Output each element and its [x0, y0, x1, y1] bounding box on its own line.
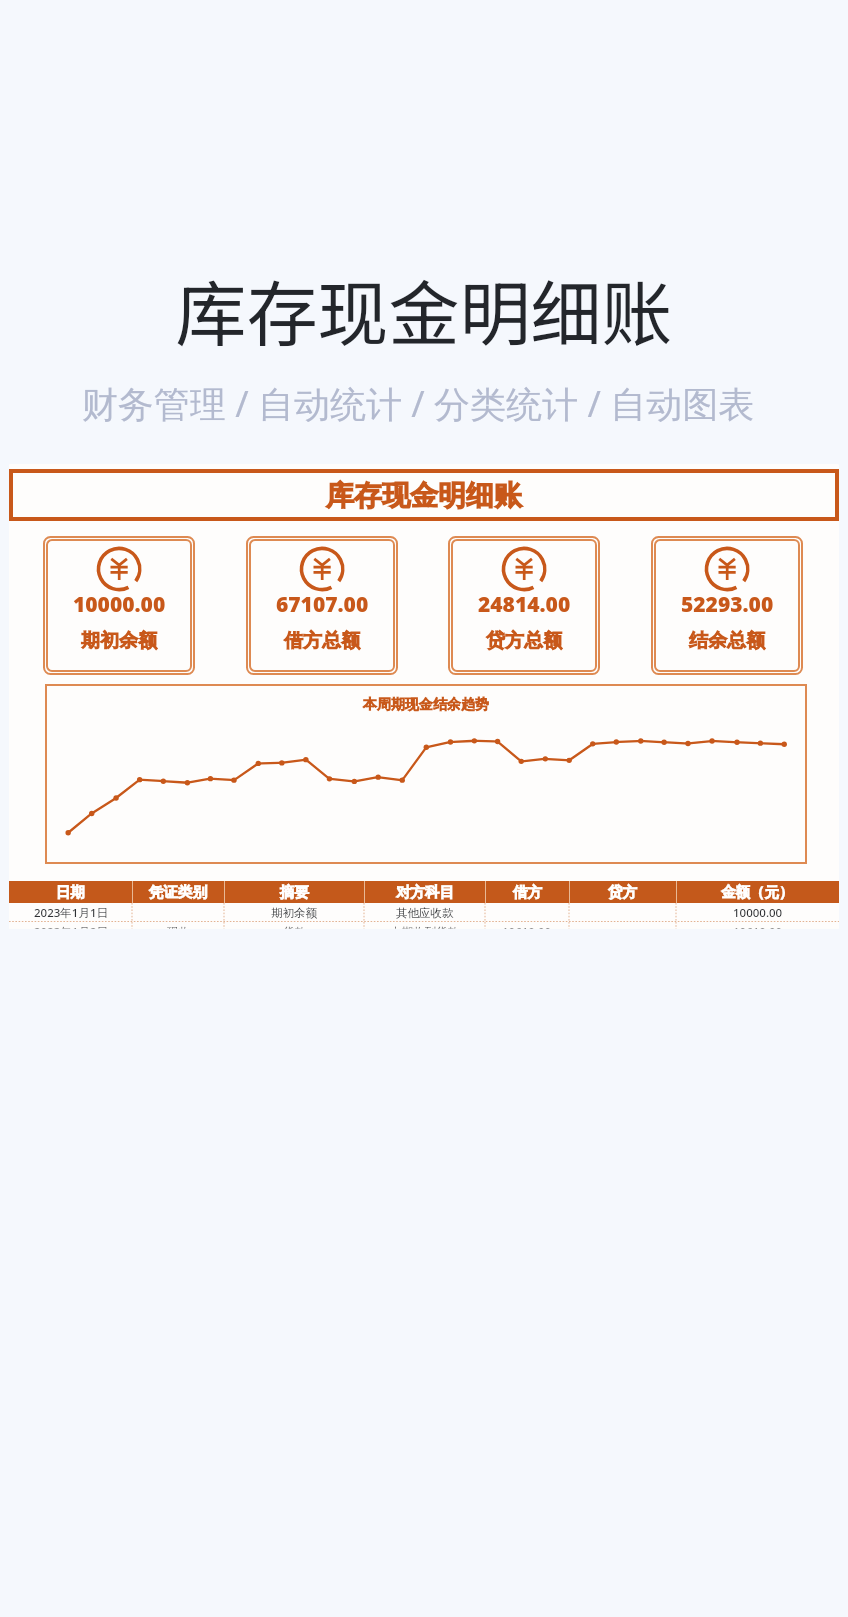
other: 金额	[300, 547, 344, 591]
staticText: 贷方	[608, 883, 637, 901]
button[interactable]: 金额	[651, 536, 803, 675]
button[interactable]: 金额	[43, 536, 195, 675]
staticText: 期初余额	[81, 629, 157, 653]
staticText: 52293.00	[681, 590, 774, 619]
staticText: 期初余额	[271, 906, 317, 920]
staticText: 借方	[513, 883, 542, 901]
staticText: 财务管理 / 自动统计 / 分类统计 / 自动图表	[0, 379, 842, 428]
other: 金额	[502, 547, 546, 591]
staticText: 金额（元）	[721, 883, 794, 901]
staticText: 67107.00	[276, 590, 369, 619]
staticText: 货款	[283, 925, 306, 929]
other: 金额	[97, 547, 141, 591]
button[interactable]: 库存现金明细账	[9, 469, 839, 521]
staticText: 10610.00	[502, 924, 552, 929]
staticText: 借方总额	[284, 629, 360, 653]
staticText: 2023年1月1日	[34, 905, 108, 921]
staticText: 本期收到货款	[390, 925, 459, 929]
button[interactable]: 2023年1月2日	[9, 922, 839, 929]
staticText: 日期	[56, 883, 85, 901]
staticText: 凭证类别	[149, 883, 207, 901]
staticText: 10000.00	[73, 590, 166, 619]
button[interactable]: 2023年1月1日	[9, 903, 839, 922]
staticText: 现收	[167, 925, 190, 929]
staticText: 贷方总额	[486, 629, 562, 653]
other: 金额	[705, 547, 749, 591]
staticText: 2023年1月2日	[34, 924, 108, 929]
staticText: 10000.00	[733, 905, 783, 921]
button[interactable]: 金额	[246, 536, 398, 675]
staticText: 其他应收款	[396, 906, 454, 920]
staticText: 摘要	[280, 883, 309, 901]
staticText: 本周期现金结余趋势	[45, 696, 807, 714]
staticText: 24814.00	[478, 590, 571, 619]
staticText: 10610.00	[733, 924, 783, 929]
staticText: 库存现金明细账	[0, 258, 848, 361]
button[interactable]: 金额	[448, 536, 600, 675]
staticText: 库存现金明细账	[326, 478, 522, 513]
staticText: 对方科目	[396, 883, 454, 901]
staticText: 结余总额	[689, 629, 765, 653]
